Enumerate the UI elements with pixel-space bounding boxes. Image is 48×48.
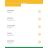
staticText: Menu [21,0,27,6]
button[interactable] [7,31,41,37]
button[interactable] [7,39,41,45]
button[interactable] [7,16,41,22]
button[interactable] [7,24,41,30]
button[interactable] [7,8,41,14]
